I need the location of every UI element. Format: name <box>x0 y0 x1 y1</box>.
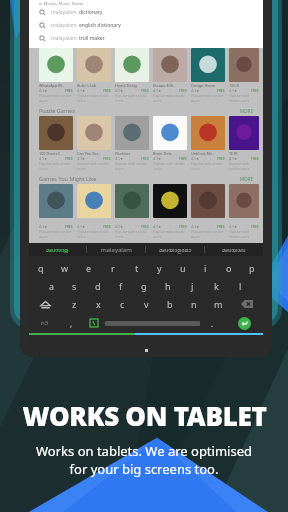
staticText: FREE <box>65 156 73 161</box>
button[interactable]: Search <box>39 9 263 16</box>
button[interactable]: 4.1★ <box>77 184 111 239</box>
staticText: Popular with similar users <box>153 161 187 171</box>
button[interactable]: 100 D <box>229 48 259 103</box>
button[interactable]: n <box>182 295 206 313</box>
staticText: r <box>111 262 115 274</box>
button[interactable]: c <box>110 295 134 313</box>
button[interactable]: Change language <box>29 313 61 333</box>
button[interactable]: മലയാള <box>29 243 86 256</box>
staticText: b <box>167 298 173 310</box>
staticText: Home Desig <box>115 83 137 88</box>
staticText: Popular with similar users <box>115 229 149 239</box>
staticText: Popular with similar users <box>39 161 73 171</box>
button[interactable]: d <box>86 277 109 295</box>
button[interactable]: j <box>180 277 204 295</box>
staticText: Unblock Me.. <box>191 151 215 156</box>
staticText: malayalam <box>51 22 79 29</box>
staticText: FREE <box>103 224 111 229</box>
button[interactable]: q <box>29 259 53 277</box>
button[interactable]: TETR <box>229 116 259 171</box>
staticText: FREE <box>179 88 187 93</box>
button[interactable]: Rube's Lab <box>77 48 111 103</box>
button[interactable]: p <box>240 259 263 277</box>
button[interactable]: Search <box>39 22 263 29</box>
button[interactable]: Enter <box>238 317 251 330</box>
button[interactable]: b <box>158 295 182 313</box>
staticText: മലയാള <box>46 247 69 253</box>
button[interactable]: Brain Dots <box>153 116 187 171</box>
button[interactable]: malayalam <box>87 243 145 256</box>
staticText: 4.1★ <box>153 156 162 161</box>
staticText: j <box>191 280 194 292</box>
staticText: 4.1★ <box>115 156 124 161</box>
button[interactable]: i <box>194 259 217 277</box>
button[interactable]: Search <box>39 35 263 42</box>
button[interactable]: മലയാളമോ <box>146 243 204 256</box>
button[interactable]: z <box>62 295 86 313</box>
other: Search <box>39 35 46 42</box>
button[interactable]: Home Desig <box>115 48 149 103</box>
button[interactable]: . <box>200 313 225 333</box>
button[interactable]: Plumber <box>115 116 149 171</box>
staticText: 4.1★ <box>229 88 238 93</box>
button[interactable]: e <box>77 259 101 277</box>
staticText: 4.1★ <box>153 88 162 93</box>
staticText: Games You Might Like <box>39 175 97 182</box>
button[interactable]: u <box>171 259 194 277</box>
staticText: FREE <box>141 88 149 93</box>
button[interactable]: s <box>63 277 86 295</box>
button[interactable]: y <box>148 259 171 277</box>
button[interactable]: 100 Doors C <box>39 116 73 171</box>
staticText: in Movies, Music, Books <box>39 1 84 6</box>
button[interactable]: g <box>132 277 156 295</box>
button[interactable]: 4.1★ <box>115 184 149 239</box>
button[interactable]: 4.1★ <box>191 184 225 239</box>
button[interactable]: Backspace <box>230 295 263 313</box>
button[interactable]: t <box>125 259 148 277</box>
staticText: FREE <box>251 88 259 93</box>
button[interactable]: Games You Might Like <box>39 175 253 182</box>
button[interactable]: WhatsApp M.. <box>39 48 73 103</box>
button[interactable]: l <box>228 277 252 295</box>
staticText: Popular with similar users <box>39 229 73 239</box>
staticText: Popular with similar users <box>191 161 225 171</box>
staticText: . <box>211 318 214 329</box>
button[interactable]: a <box>40 277 63 295</box>
staticText: FREE <box>179 156 187 161</box>
button[interactable]: Unblock Me.. <box>191 116 225 171</box>
button[interactable]: , <box>61 313 82 333</box>
button[interactable]: Can You Esc.. <box>77 116 111 171</box>
staticText: troll maker <box>79 35 105 42</box>
button[interactable]: Emoji <box>82 313 105 333</box>
button[interactable]: w <box>53 259 77 277</box>
staticText: FREE <box>217 156 225 161</box>
button[interactable]: Escape 400.. <box>153 48 187 103</box>
button[interactable]: h <box>156 277 180 295</box>
staticText: FREE <box>251 224 259 229</box>
button[interactable]: f <box>109 277 132 295</box>
button[interactable]: മലയാല <box>205 243 263 256</box>
button[interactable]: Puzzle Games <box>39 107 253 114</box>
other: Search <box>39 22 46 29</box>
button[interactable]: Design Home <box>191 48 225 103</box>
button[interactable]: Shift <box>29 295 62 313</box>
staticText: 4.1★ <box>229 224 238 229</box>
button[interactable]: 4.1★ <box>229 184 259 239</box>
staticText: 4.1★ <box>229 156 238 161</box>
button[interactable]: r <box>101 259 125 277</box>
button[interactable]: 4.1★ <box>39 184 73 239</box>
staticText: Popular with similar users <box>191 93 225 103</box>
button[interactable]: m <box>206 295 230 313</box>
button[interactable]: 4.1★ <box>153 184 187 239</box>
button[interactable]: x <box>86 295 110 313</box>
button[interactable]: v <box>134 295 158 313</box>
staticText: FREE <box>217 88 225 93</box>
staticText: n <box>191 298 197 310</box>
staticText: a <box>49 280 55 292</box>
staticText: t <box>135 262 139 274</box>
staticText: Brain Dots <box>153 151 172 156</box>
staticText: Puzzle Games <box>39 107 75 114</box>
button[interactable]: o <box>217 259 240 277</box>
button[interactable]: k <box>204 277 228 295</box>
